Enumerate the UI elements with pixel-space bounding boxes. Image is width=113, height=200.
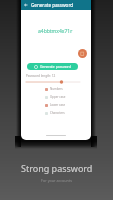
staticText: Upper case: [50, 95, 66, 99]
button[interactable]: Upper case: [45, 93, 91, 101]
staticText: a4bbtmx4x71r: [38, 28, 73, 35]
button[interactable]: Generate password: [27, 63, 78, 70]
staticText: Strong password: [21, 162, 93, 174]
button[interactable]: Back: [21, 0, 91, 10]
button[interactable]: Numbers: [45, 85, 91, 93]
button[interactable]: [25, 78, 81, 86]
staticText: Numbers: [50, 87, 63, 91]
other: Back: [24, 3, 28, 7]
staticText: For your accounts: [41, 178, 72, 183]
button[interactable]: Lower case: [45, 101, 91, 109]
button[interactable]: Copy password: [78, 49, 87, 58]
staticText: Characters: [50, 111, 65, 115]
staticText: Generate password: [31, 2, 74, 8]
staticText: Lower case: [50, 103, 66, 107]
staticText: Generate password: [40, 64, 72, 69]
staticText: Password length: 12: [26, 74, 56, 78]
button[interactable]: Characters: [45, 109, 91, 117]
